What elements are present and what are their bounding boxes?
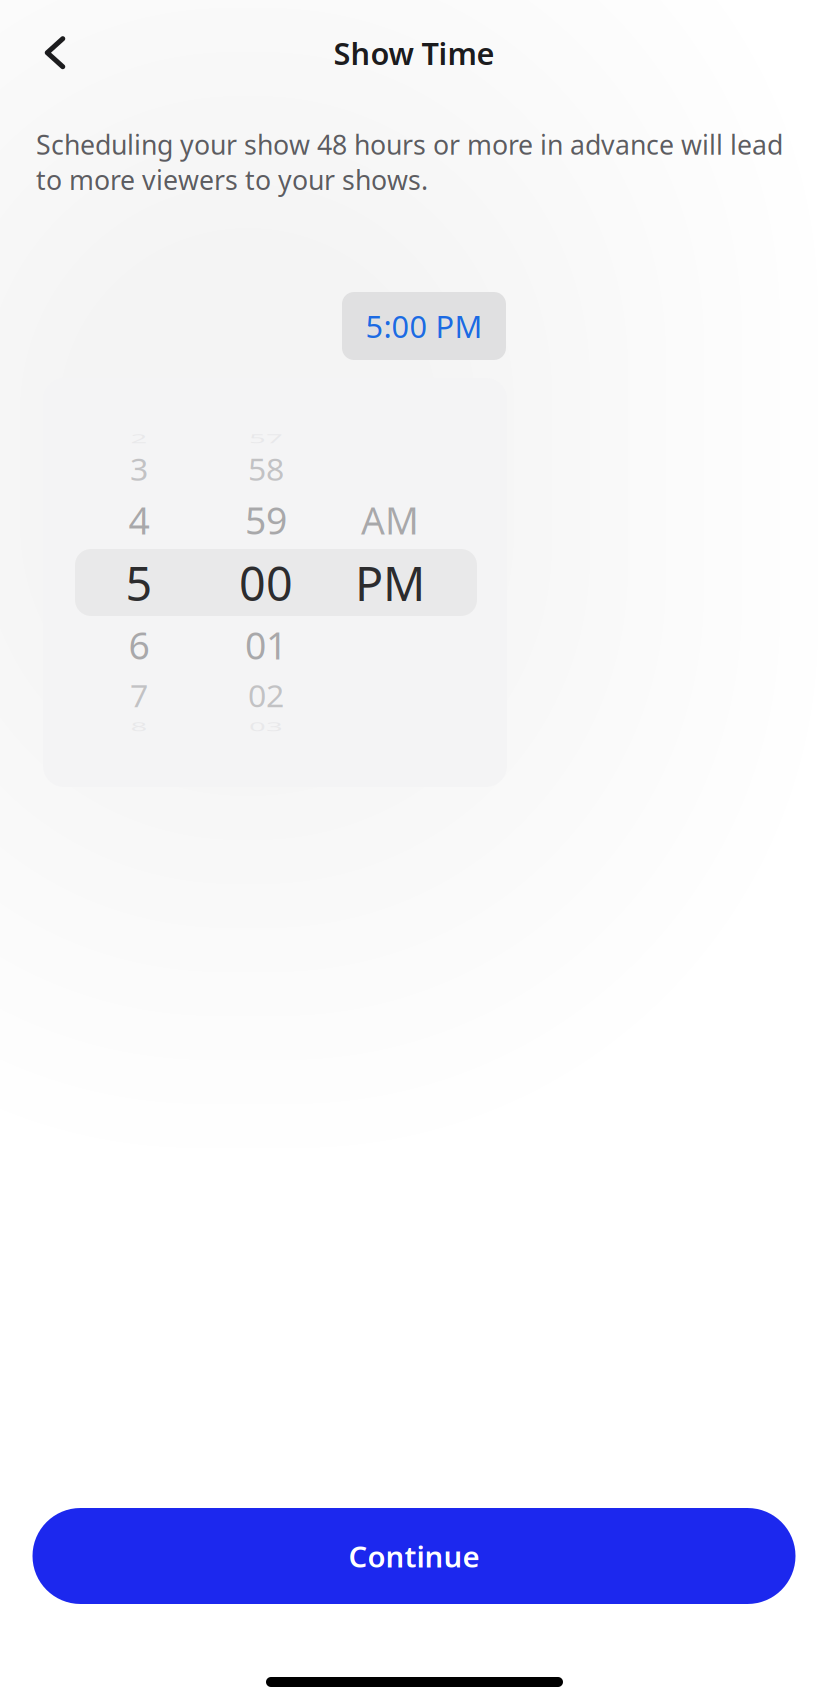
staticText: 3	[130, 448, 148, 490]
staticText: 02	[248, 674, 284, 717]
staticText: PM	[355, 552, 425, 614]
staticText: 5	[125, 552, 152, 614]
staticText: 7	[130, 674, 148, 717]
button[interactable]: Continue	[32, 1508, 795, 1604]
button[interactable]: 5:00 PM	[342, 292, 506, 360]
staticText: 5:00 PM	[365, 306, 482, 346]
staticText: 00	[239, 552, 293, 614]
staticText: AM	[361, 495, 419, 545]
staticText: 6	[128, 620, 149, 670]
staticText: 01	[245, 620, 287, 670]
staticText: 59	[245, 495, 287, 545]
staticText: Continue	[348, 1536, 479, 1575]
staticText: 4	[128, 495, 149, 545]
staticText: 58	[248, 448, 284, 490]
button[interactable]: Back	[11, 7, 99, 99]
staticText: Show Time	[333, 33, 494, 73]
staticText: Scheduling your show 48 hours or more in…	[36, 127, 783, 197]
